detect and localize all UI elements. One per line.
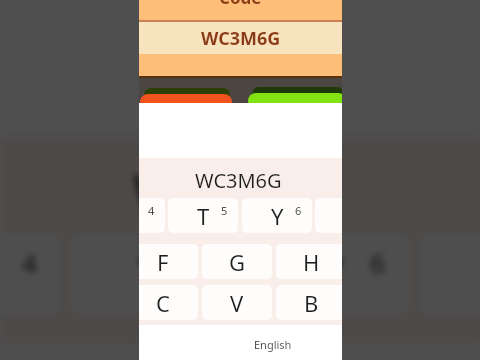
button[interactable]: F <box>139 244 198 279</box>
staticText: T <box>197 201 210 231</box>
staticText: F <box>157 247 169 277</box>
button[interactable]: Y <box>245 233 411 316</box>
button[interactable] <box>248 93 342 109</box>
staticText: WC3M6G <box>201 26 281 51</box>
staticText: B <box>304 288 319 318</box>
staticText: V <box>230 288 244 318</box>
staticText: G <box>229 247 246 277</box>
button[interactable]: T <box>168 198 238 233</box>
staticText: 5 <box>221 203 228 218</box>
button[interactable]: T <box>69 233 235 316</box>
button[interactable]: F <box>0 342 140 360</box>
button[interactable]: R <box>139 198 165 233</box>
button[interactable]: B <box>276 285 342 320</box>
staticText: WC3M6G <box>195 167 282 194</box>
button[interactable]: G <box>150 342 316 360</box>
staticText: C <box>156 288 170 318</box>
staticText: 4 <box>22 244 39 280</box>
staticText: 6 <box>370 244 387 280</box>
staticText: English <box>254 337 292 352</box>
button[interactable]: H <box>276 244 342 279</box>
staticText: Code <box>219 0 262 6</box>
staticText: T <box>138 240 169 311</box>
button[interactable]: V <box>202 285 272 320</box>
staticText: 6 <box>295 203 302 218</box>
button[interactable]: Y <box>242 198 312 233</box>
staticText: Y <box>313 240 344 311</box>
button[interactable]: R <box>0 233 62 316</box>
button[interactable] <box>140 94 232 110</box>
staticText: WC3M6G <box>133 159 339 223</box>
button[interactable]: H <box>325 342 480 360</box>
staticText: Y <box>271 201 284 231</box>
button[interactable]: C <box>139 285 198 320</box>
staticText: 4 <box>148 203 155 218</box>
button[interactable]: G <box>202 244 272 279</box>
staticText: 5 <box>195 244 212 280</box>
staticText: H <box>303 247 320 277</box>
